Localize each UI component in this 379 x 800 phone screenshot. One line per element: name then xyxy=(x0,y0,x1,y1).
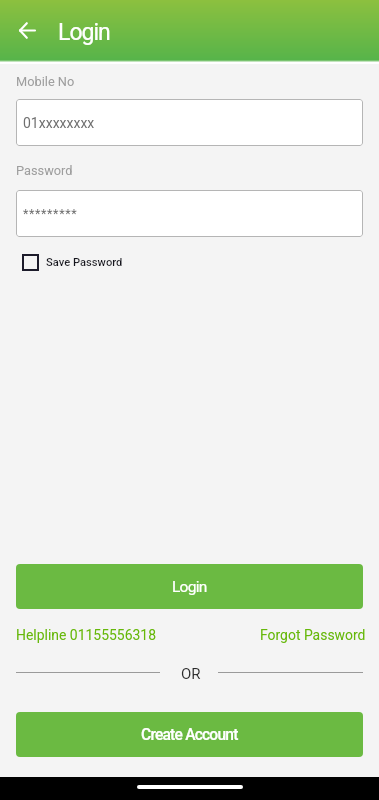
button[interactable]: Login xyxy=(16,564,363,609)
staticText: 01xxxxxxxx xyxy=(23,115,95,131)
button[interactable]: ********* xyxy=(16,190,363,237)
staticText: OR xyxy=(181,665,201,683)
staticText: Save Password xyxy=(46,256,123,269)
button[interactable]: Save Password xyxy=(16,254,363,271)
staticText: Password xyxy=(16,163,73,178)
staticText: Mobile No xyxy=(16,74,75,89)
staticText: Login xyxy=(172,578,207,596)
button[interactable]: Forgot Password xyxy=(260,627,366,643)
staticText: Login xyxy=(58,19,110,46)
button[interactable]: Create Account xyxy=(16,712,363,757)
button[interactable]: 01xxxxxxxx xyxy=(16,99,363,146)
button[interactable]: Back xyxy=(11,14,43,46)
staticText: Create Account xyxy=(141,726,238,744)
button[interactable]: Helpline 01155556318 xyxy=(16,627,157,643)
staticText: ********* xyxy=(23,206,78,221)
